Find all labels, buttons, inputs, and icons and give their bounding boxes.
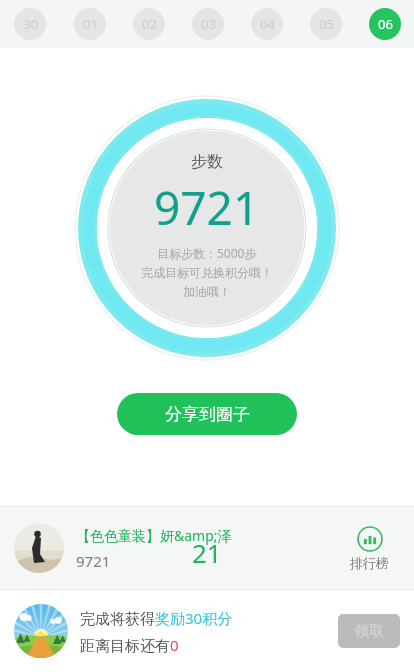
staticText: 01: [83, 15, 98, 33]
staticText: 完成目标可兑换积分哦！: [141, 265, 273, 280]
button[interactable]: 06: [369, 8, 401, 40]
staticText: 05: [319, 15, 334, 33]
staticText: 距离目标还有0: [80, 635, 179, 655]
button[interactable]: 领取: [338, 614, 400, 648]
staticText: 06: [378, 15, 393, 33]
staticText: 9721: [154, 176, 260, 239]
staticText: 领取: [354, 622, 384, 641]
staticText: 04: [260, 15, 275, 33]
button[interactable]: 完成将获得奖励30积分: [0, 590, 414, 672]
staticText: 02: [142, 15, 157, 33]
staticText: 完成将获得奖励30积分: [80, 608, 233, 628]
button[interactable]: 【色色童装】妍&amp;泽: [0, 507, 414, 589]
button[interactable]: 04: [251, 8, 283, 40]
button[interactable]: 30: [14, 8, 46, 40]
staticText: 21: [192, 535, 222, 570]
staticText: 步数: [191, 152, 223, 172]
staticText: 分享到圈子: [165, 404, 250, 425]
button[interactable]: 05: [310, 8, 342, 40]
button[interactable]: 01: [74, 8, 106, 40]
button[interactable]: 分享到圈子: [117, 393, 297, 435]
staticText: 03: [201, 15, 216, 33]
button[interactable]: 排行榜: [338, 526, 400, 571]
staticText: 排行榜: [350, 555, 389, 571]
staticText: 加油哦！: [183, 284, 231, 299]
staticText: 【色色童装】妍&amp;泽: [76, 526, 232, 545]
staticText: 9721: [76, 551, 111, 571]
button[interactable]: 03: [192, 8, 224, 40]
button[interactable]: 02: [133, 8, 165, 40]
staticText: 目标步数：5000步: [157, 245, 257, 261]
staticText: 30: [23, 15, 38, 33]
